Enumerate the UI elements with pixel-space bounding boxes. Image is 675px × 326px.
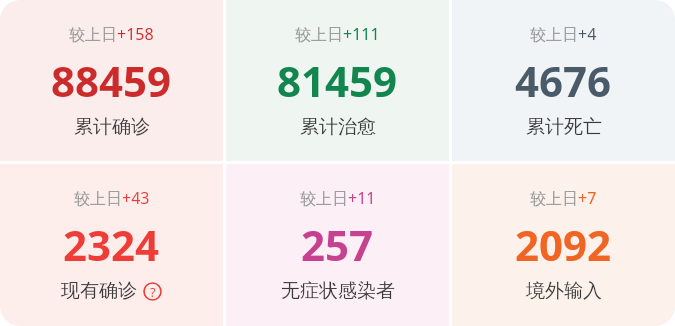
staticText: 88459 [51, 52, 172, 109]
staticText: ? [150, 283, 156, 301]
button[interactable]: 较上日+43 [0, 164, 223, 326]
staticText: 81459 [277, 52, 398, 109]
button[interactable]: 较上日+11 [226, 164, 449, 326]
staticText: 2092 [515, 216, 612, 273]
staticText: 累计死亡 [526, 115, 602, 139]
button[interactable]: 较上日+4 [452, 0, 675, 161]
staticText: 累计确诊 [74, 115, 150, 139]
staticText: 较上日+7 [530, 187, 597, 209]
staticText: 2324 [63, 216, 160, 273]
button[interactable]: 较上日+158 [0, 0, 223, 161]
button[interactable]: 较上日+7 [452, 164, 675, 326]
staticText: 257 [301, 216, 374, 273]
staticText: 较上日+11 [300, 187, 376, 209]
staticText: 较上日+158 [69, 23, 154, 45]
button[interactable]: 较上日+111 [226, 0, 449, 161]
staticText: 无症状感染者 [281, 279, 395, 303]
staticText: 较上日+43 [74, 187, 150, 209]
staticText: 累计治愈 [300, 115, 376, 139]
staticText: 现有确诊 [61, 279, 137, 303]
button[interactable]: 说明 [143, 282, 162, 301]
staticText: 较上日+111 [295, 23, 380, 45]
staticText: 4676 [515, 52, 612, 109]
staticText: 较上日+4 [530, 23, 597, 45]
staticText: 境外输入 [526, 279, 602, 303]
